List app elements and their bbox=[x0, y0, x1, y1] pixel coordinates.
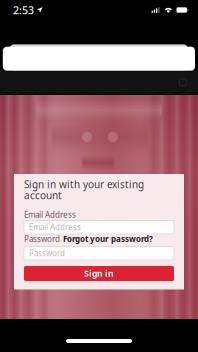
button[interactable]: Sign in bbox=[24, 266, 174, 281]
staticText: 2:53 bbox=[13, 3, 34, 17]
staticText: Sign in bbox=[84, 268, 114, 279]
button[interactable]: Forgot your password? bbox=[63, 235, 153, 243]
staticText: Sign in with your existing account bbox=[24, 179, 144, 201]
staticText: Email Address bbox=[24, 210, 76, 219]
staticText: Email Address bbox=[29, 222, 81, 233]
button[interactable]: Close bbox=[172, 71, 194, 93]
staticText: Password bbox=[24, 235, 60, 243]
staticText: Password bbox=[29, 248, 65, 259]
staticText: Forgot your password? bbox=[63, 235, 153, 243]
